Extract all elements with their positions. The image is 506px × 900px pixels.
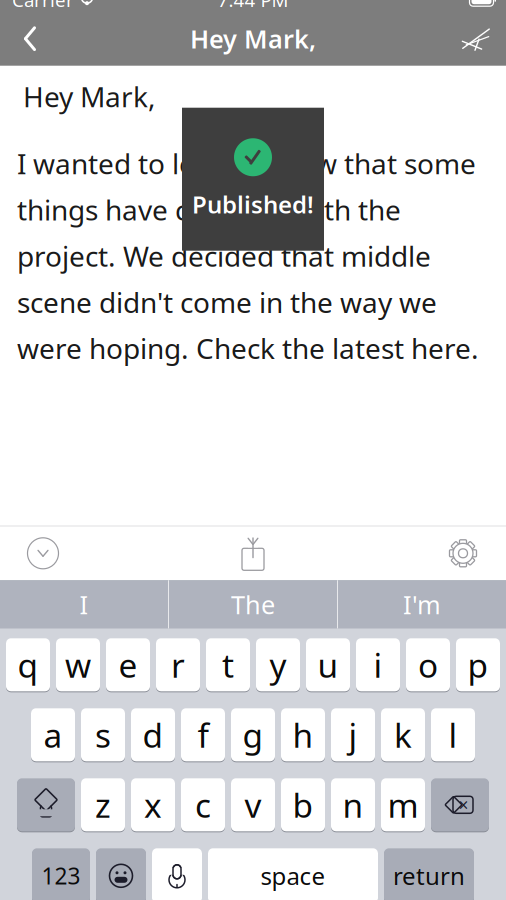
button[interactable]: x [131, 777, 175, 832]
button[interactable] [152, 847, 202, 900]
button[interactable]: r [156, 637, 200, 692]
button[interactable]: m [381, 777, 425, 832]
staticText: r [171, 643, 185, 687]
staticText: i [373, 643, 382, 687]
staticText: Hey Mark, [190, 22, 316, 55]
staticText: × [458, 793, 468, 816]
button[interactable]: I'm [338, 580, 506, 628]
staticText: Carrier [12, 0, 74, 12]
button[interactable]: p [456, 637, 500, 692]
button[interactable]: y [256, 637, 300, 692]
button[interactable]: q [6, 637, 50, 692]
staticText: o [418, 643, 438, 687]
staticText: w [65, 643, 91, 687]
staticText: f [197, 713, 208, 757]
staticText: g [242, 713, 263, 757]
staticText: Hey Mark, [23, 78, 156, 115]
button[interactable]: b [281, 777, 325, 832]
button[interactable]: return [384, 847, 474, 900]
staticText: The [231, 587, 275, 621]
staticText: k [394, 713, 412, 757]
staticText: h [292, 713, 313, 757]
staticText: space [260, 860, 325, 892]
button[interactable]: j [331, 707, 375, 762]
button[interactable]: e [106, 637, 150, 692]
button[interactable]: space [208, 847, 378, 900]
staticText: j [348, 713, 357, 757]
staticText: n [342, 783, 363, 827]
button[interactable]: f [181, 707, 225, 762]
button[interactable]: i [356, 637, 400, 692]
staticText: 123 [41, 861, 80, 891]
button[interactable] [96, 847, 146, 900]
button[interactable]: o [406, 637, 450, 692]
staticText: I [79, 587, 88, 621]
staticText: return [393, 860, 465, 892]
staticText: y [269, 643, 286, 687]
button[interactable]: u [306, 637, 350, 692]
staticText: c [195, 783, 211, 827]
staticText: Published! [192, 188, 314, 220]
staticText: l [448, 713, 457, 757]
button[interactable]: Share [227, 529, 279, 577]
button[interactable]: l [431, 707, 475, 762]
staticText: e [118, 643, 137, 687]
button[interactable]: Settings [437, 529, 489, 577]
staticText: d [142, 713, 163, 757]
staticText: u [317, 643, 338, 687]
button[interactable]: s [81, 707, 125, 762]
button[interactable]: Send [454, 17, 498, 61]
button[interactable]: Hide keyboard [17, 529, 69, 577]
button[interactable]: d [131, 707, 175, 762]
button[interactable] [17, 777, 75, 832]
staticText: v [244, 783, 261, 827]
button[interactable]: 123 [32, 847, 90, 900]
staticText: a [43, 713, 62, 757]
staticText: p [467, 643, 488, 687]
button[interactable]: c [181, 777, 225, 832]
staticText: 7:44 PM [217, 0, 288, 12]
staticText: m [387, 783, 418, 827]
staticText: q [17, 643, 38, 687]
staticText: I'm [403, 587, 441, 621]
button[interactable]: g [231, 707, 275, 762]
button[interactable]: I [0, 580, 168, 628]
staticText: b [292, 783, 313, 827]
staticText: x [144, 783, 162, 827]
button[interactable]: a [31, 707, 75, 762]
button[interactable]: t [206, 637, 250, 692]
staticText: z [95, 783, 111, 827]
button[interactable]: The [169, 580, 337, 628]
button[interactable]: v [231, 777, 275, 832]
button[interactable]: Back [8, 17, 52, 61]
staticText: I wanted to let you know that some thing… [17, 145, 479, 367]
button[interactable]: n [331, 777, 375, 832]
button[interactable]: h [281, 707, 325, 762]
button[interactable]: w [56, 637, 100, 692]
staticText: s [95, 713, 111, 757]
button[interactable]: k [381, 707, 425, 762]
button[interactable]: × [431, 777, 489, 832]
staticText: t [222, 643, 234, 687]
button[interactable]: z [81, 777, 125, 832]
